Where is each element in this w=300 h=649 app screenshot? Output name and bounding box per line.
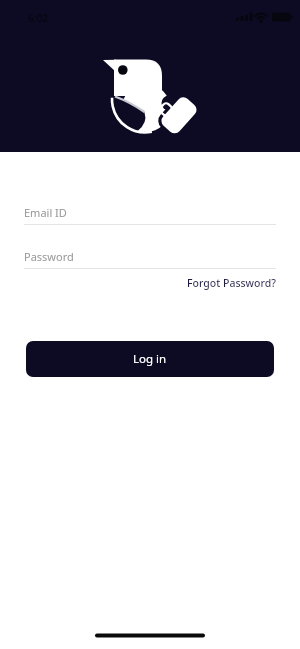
staticText: 6:02	[28, 11, 48, 25]
button[interactable]: Password	[24, 245, 276, 268]
button[interactable]: Log in	[26, 341, 274, 377]
staticText: Forgot Password?	[187, 276, 276, 290]
staticText: Password	[24, 249, 74, 264]
button[interactable]: Email ID	[24, 200, 276, 224]
staticText: Log in	[133, 351, 167, 367]
staticText: Email ID	[24, 205, 67, 220]
button[interactable]: Forgot Password?	[187, 276, 276, 290]
